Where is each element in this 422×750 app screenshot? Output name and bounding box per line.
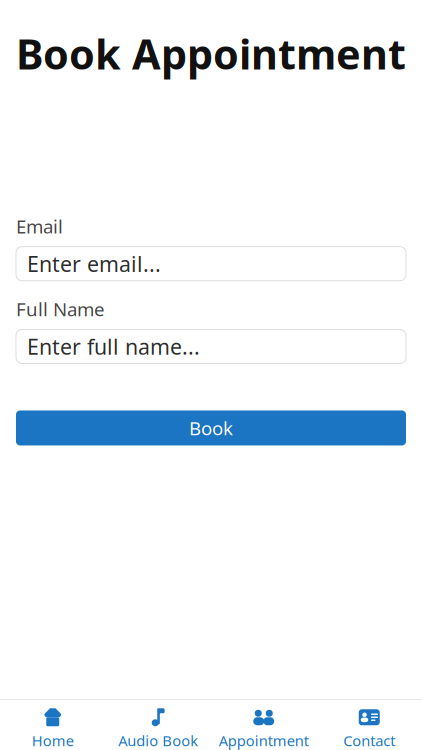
staticText: Book — [189, 416, 233, 440]
button[interactable]: Enter full name... — [16, 329, 406, 363]
button[interactable]: Appointment — [211, 708, 316, 750]
staticText: Contact — [343, 731, 395, 750]
staticText: Home — [32, 731, 74, 750]
button[interactable]: Audio Book — [105, 708, 211, 750]
staticText: Book Appointment — [16, 26, 406, 81]
staticText: Audio Book — [118, 731, 198, 750]
button[interactable]: Enter email... — [16, 247, 406, 281]
staticText: Appointment — [219, 731, 309, 750]
staticText: Email — [16, 214, 63, 239]
staticText: Enter email... — [27, 249, 161, 278]
button[interactable]: Book — [16, 410, 406, 445]
staticText: Enter full name... — [27, 332, 200, 361]
staticText: Full Name — [16, 297, 105, 321]
button[interactable]: Home — [0, 708, 105, 750]
button[interactable]: Contact — [316, 708, 422, 750]
